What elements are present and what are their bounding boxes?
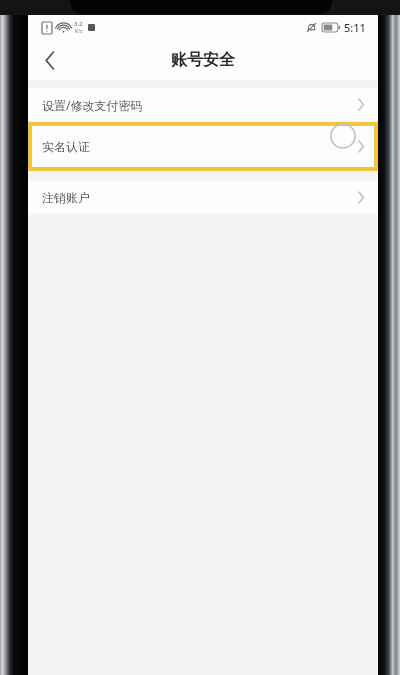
button[interactable]: 设置/修改支付密码 bbox=[28, 88, 378, 121]
staticText: 实名认证 bbox=[42, 139, 90, 154]
staticText: 账号安全 bbox=[171, 50, 235, 70]
staticText: 注销账户 bbox=[42, 190, 90, 205]
staticText: 5:11 bbox=[344, 20, 366, 35]
staticText: K/s bbox=[75, 28, 83, 35]
button[interactable]: 注销账户 bbox=[28, 181, 378, 214]
button[interactable]: Back bbox=[28, 40, 72, 80]
staticText: 3.2 bbox=[74, 20, 83, 28]
staticText: 设置/修改支付密码 bbox=[42, 97, 143, 113]
button[interactable]: 实名认证 bbox=[32, 126, 374, 167]
